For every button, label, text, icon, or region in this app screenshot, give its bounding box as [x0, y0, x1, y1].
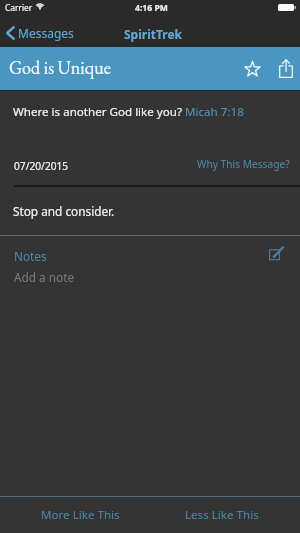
button[interactable]: Messages: [0, 18, 82, 47]
button[interactable]: Less Like This: [156, 500, 288, 530]
staticText: Messages: [18, 25, 74, 41]
staticText: More Like This: [41, 507, 120, 523]
staticText: Micah 7:18: [185, 104, 244, 120]
button[interactable]: More Like This: [14, 500, 146, 530]
staticText: God is Unique: [9, 56, 111, 79]
staticText: Add a note: [14, 269, 75, 285]
button[interactable]: Why This Message?: [193, 152, 293, 176]
staticText: Where is another God like you?: [13, 104, 185, 120]
staticText: Less Like This: [185, 507, 259, 523]
staticText: Stop and consider.: [13, 203, 115, 219]
staticText: Why This Message?: [197, 157, 290, 171]
button[interactable]: Favorite: [238, 52, 266, 86]
button[interactable]: Edit note: [264, 243, 290, 263]
staticText: Carrier: [5, 2, 33, 13]
staticText: SpiritTrek: [124, 26, 182, 42]
staticText: 4:16 PM: [135, 2, 168, 14]
staticText: Notes: [14, 248, 47, 264]
button[interactable]: Share: [272, 51, 299, 85]
staticText: 07/20/2015: [14, 159, 69, 173]
